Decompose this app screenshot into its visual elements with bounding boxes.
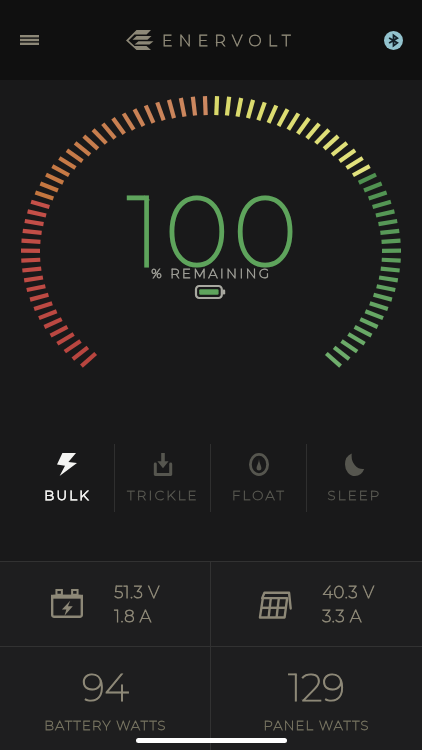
button[interactable]: 129 [211,647,422,750]
button[interactable]: FLOAT [211,440,306,515]
staticText: TRICKLE [127,487,199,503]
staticText: % REMAINING [151,265,272,281]
staticText: BULK [44,487,91,503]
staticText: 1.8 A [114,606,152,626]
staticText: 1.8 A [114,606,152,626]
button[interactable]: SLEEP [307,440,402,515]
staticText: BULK [44,487,91,503]
staticText: 51.3 V [114,582,160,602]
staticText: 51.3 V [114,582,160,602]
staticText: 94 [82,664,129,710]
button[interactable]: TRICKLE [115,440,210,515]
staticText: 40.3 V [322,582,375,602]
staticText: BATTERY WATTS [44,717,167,733]
staticText: SLEEP [327,487,382,503]
staticText: 94 [82,664,129,710]
button[interactable]: 40.3 V [211,562,422,646]
staticText: 3.3 A [322,606,362,626]
button[interactable]: Menu [7,18,51,62]
staticText: PANEL WATTS [263,717,370,733]
button[interactable]: 94 [0,647,210,750]
staticText: PANEL WATTS [263,717,370,733]
button[interactable]: Bluetooth [373,20,413,60]
staticText: 100 [127,172,302,290]
staticText: ENERVOLT [162,31,297,50]
staticText: BATTERY WATTS [44,717,167,733]
staticText: % REMAINING [151,265,272,281]
staticText: 129 [288,664,345,710]
staticText: TRICKLE [127,487,199,503]
button[interactable]: 51.3 V [0,562,210,646]
staticText: FLOAT [232,487,286,503]
staticText: FLOAT [232,487,286,503]
staticText: SLEEP [327,487,382,503]
staticText: 129 [288,664,345,710]
staticText: 3.3 A [322,606,362,626]
staticText: ENERVOLT [162,31,297,50]
staticText: 40.3 V [322,582,375,602]
staticText: 100 [127,172,302,290]
button[interactable]: BULK [20,440,114,515]
